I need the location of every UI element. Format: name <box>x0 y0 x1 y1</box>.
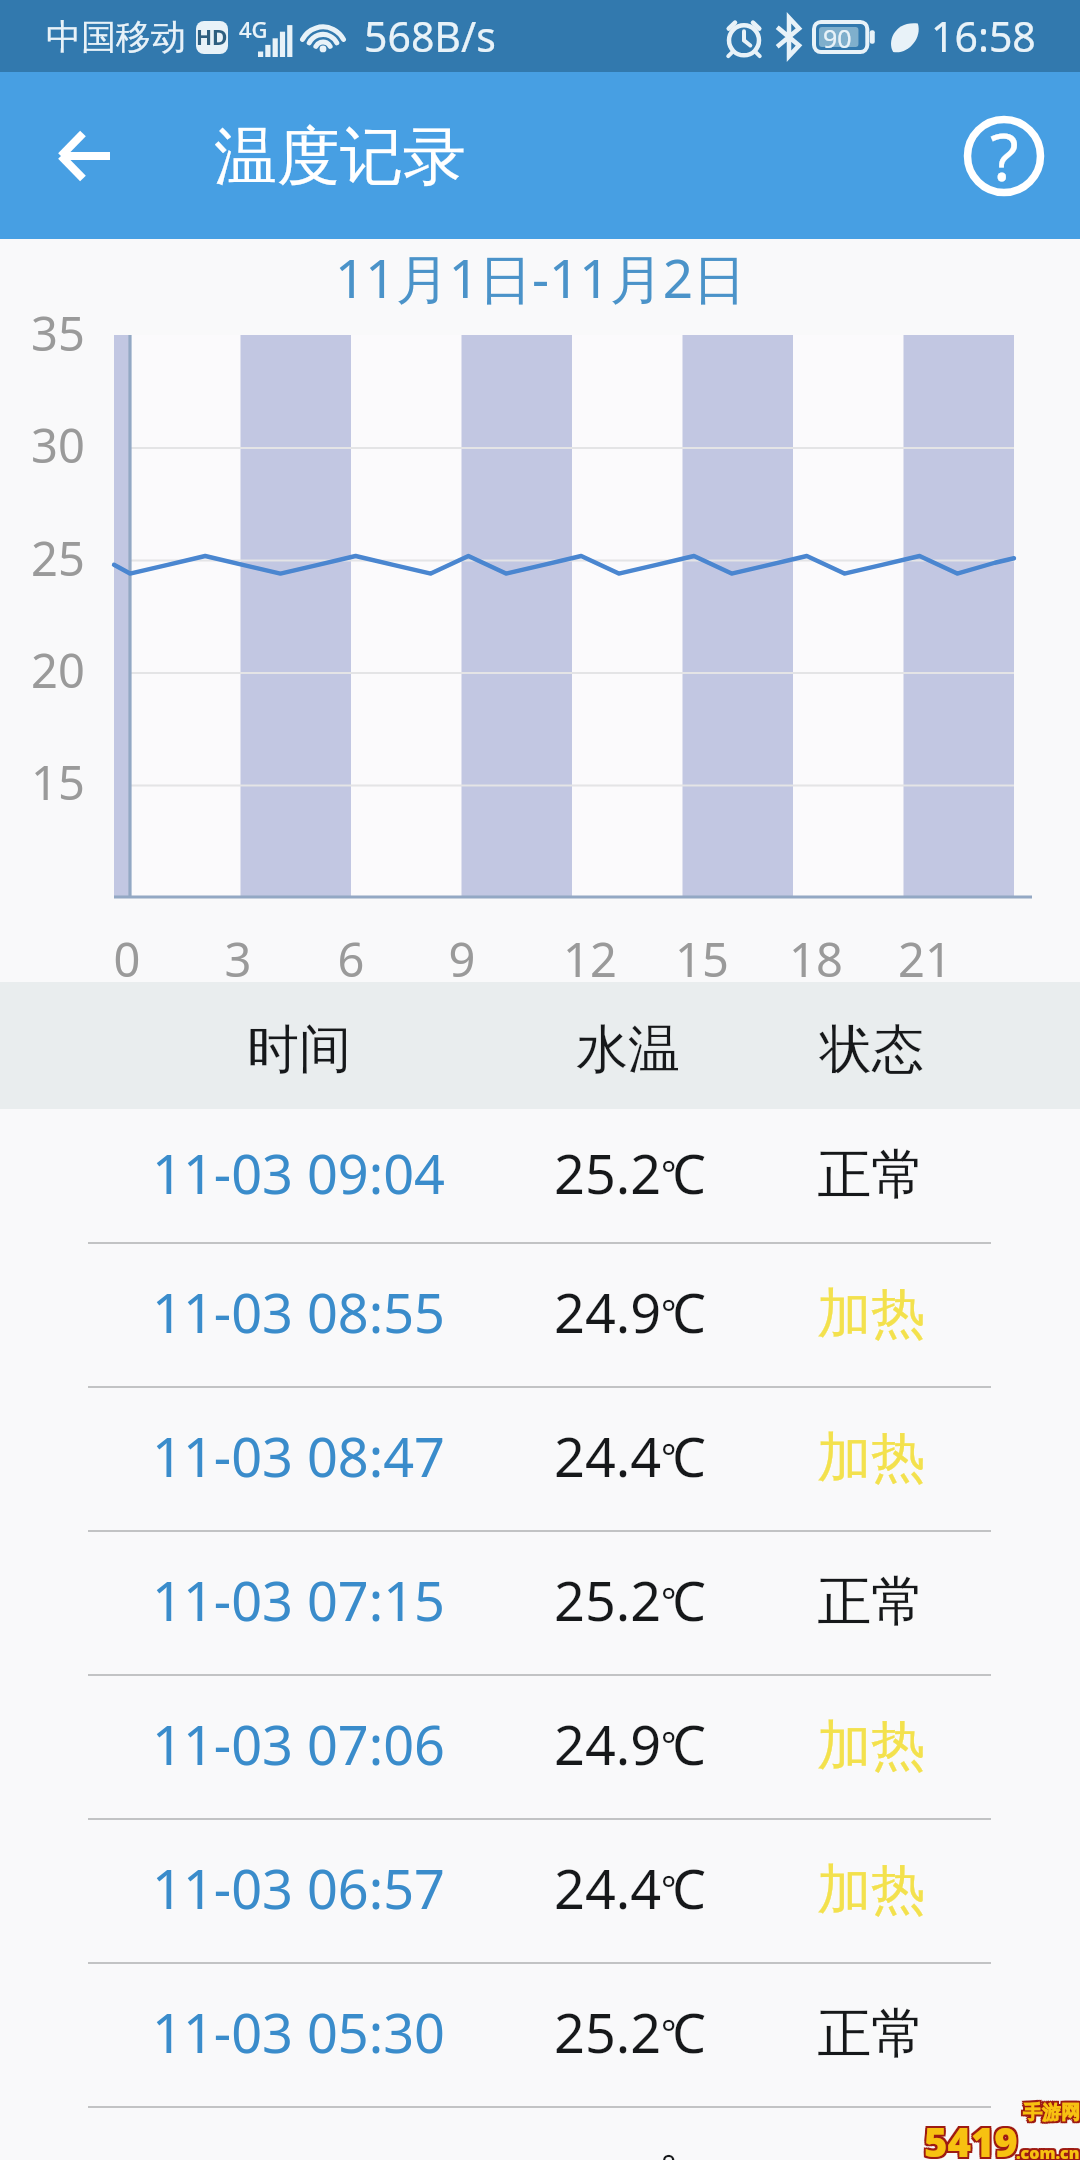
staticText: 0 <box>77 927 177 991</box>
staticText: 5419 <box>926 2112 1020 2160</box>
staticText: 手游网 <box>1025 2099 1080 2123</box>
staticText: ° <box>661 1864 677 1913</box>
staticText: 手游网 <box>1023 2101 1080 2125</box>
staticText: 20 <box>31 638 101 702</box>
staticText: .com.cn <box>1016 2144 1080 2160</box>
staticText: 568B/s <box>364 8 496 64</box>
staticText: C <box>672 2152 707 2160</box>
staticText: 中国移动 <box>46 15 186 59</box>
staticText: C <box>672 1419 707 1493</box>
staticText: .com.cn <box>1018 2144 1080 2160</box>
staticText: 12 <box>540 927 640 991</box>
staticText: C <box>672 1136 707 1210</box>
staticText: 加热 <box>817 1856 925 1924</box>
button[interactable]: 11-03 05:21 <box>0 2108 1080 2160</box>
staticText: 5419 <box>924 2116 1018 2160</box>
staticText: 15 <box>652 927 752 991</box>
staticText: .com.cn <box>1018 2140 1080 2160</box>
staticText: 24.9 <box>554 1707 662 1781</box>
staticText: 25.2 <box>554 1995 662 2069</box>
staticText: 5419 <box>922 2116 1016 2160</box>
staticText: 正常 <box>817 1141 925 1209</box>
staticText: C <box>672 1275 707 1349</box>
staticText: 21 <box>875 927 975 991</box>
staticText: 手游网 <box>1023 2099 1080 2123</box>
staticText: 24.4 <box>554 1851 662 1925</box>
staticText: .com.cn <box>1018 2142 1080 2160</box>
staticText: 加热 <box>817 1424 925 1492</box>
staticText: 5419 <box>922 2114 1016 2160</box>
staticText: 25.2 <box>554 1563 662 1637</box>
button[interactable]: 11-03 08:55 <box>0 1244 1080 1388</box>
staticText: 正常 <box>817 2000 925 2068</box>
staticText: 5419 <box>924 2112 1018 2160</box>
staticText: 11-03 09:04 <box>152 1136 446 1210</box>
staticText: .com.cn <box>1014 2140 1078 2160</box>
staticText: 35 <box>31 301 101 365</box>
staticText: ° <box>661 2008 677 2057</box>
staticText: 时间 <box>247 1017 351 1083</box>
staticText: ° <box>661 1288 677 1337</box>
staticText: 30 <box>31 413 101 477</box>
staticText: 状态 <box>820 1017 924 1083</box>
staticText: 11月1日-11月2日 <box>335 241 746 313</box>
staticText: 5419 <box>922 2112 1016 2160</box>
staticText: 11-03 08:55 <box>152 1275 446 1349</box>
button[interactable]: 11-03 07:15 <box>0 1532 1080 1676</box>
staticText: 3 <box>188 927 288 991</box>
staticText: 水温 <box>576 1017 680 1083</box>
staticText: C <box>672 1995 707 2069</box>
staticText: 16:58 <box>931 8 1036 64</box>
staticText: 手游网 <box>1021 2101 1078 2125</box>
staticText: ° <box>661 2143 677 2160</box>
staticText: 15 <box>31 750 101 814</box>
staticText: 手游网 <box>1021 2103 1078 2127</box>
staticText: 加热 <box>817 1712 925 1780</box>
button[interactable]: 11-03 05:30 <box>0 1964 1080 2108</box>
staticText: ° <box>661 1720 677 1769</box>
staticText: 5419 <box>926 2116 1020 2160</box>
staticText: C <box>672 1851 707 1925</box>
staticText: 6 <box>301 927 401 991</box>
staticText: .com.cn <box>1014 2144 1078 2160</box>
staticText: ° <box>661 1432 677 1481</box>
staticText: 11-03 07:15 <box>152 1563 446 1637</box>
button[interactable]: 11-03 07:06 <box>0 1676 1080 1820</box>
staticText: 11-03 07:06 <box>152 1707 446 1781</box>
staticText: 手游网 <box>1025 2103 1080 2127</box>
staticText: 手游网 <box>1023 2103 1080 2127</box>
button[interactable]: 11-03 06:57 <box>0 1820 1080 1964</box>
staticText: 24.9 <box>554 1275 662 1349</box>
staticText: 5419 <box>926 2114 1020 2160</box>
staticText: ° <box>661 1149 677 1198</box>
staticText: ? <box>990 110 1019 200</box>
staticText: .com.cn <box>1014 2142 1078 2160</box>
staticText: 18 <box>766 927 866 991</box>
staticText: 正常 <box>817 1568 925 1636</box>
staticText: C <box>672 1563 707 1637</box>
staticText: 11-03 06:57 <box>152 1851 446 1925</box>
button[interactable]: 11-03 08:47 <box>0 1388 1080 1532</box>
staticText: 温度记录 <box>214 117 466 196</box>
staticText: 11-03 08:47 <box>152 1419 446 1493</box>
staticText: 4G <box>239 14 268 44</box>
staticText: 11-03 05:30 <box>152 1995 446 2069</box>
staticText: 手游网 <box>1025 2101 1080 2125</box>
staticText: 9 <box>412 927 512 991</box>
staticText: .com.cn <box>1016 2142 1080 2160</box>
staticText: ° <box>661 1576 677 1625</box>
staticText: 25 <box>31 526 101 590</box>
staticText: 手游网 <box>1021 2099 1078 2123</box>
staticText: 90 <box>823 21 852 55</box>
staticText: .com.cn <box>1016 2140 1080 2160</box>
button[interactable]: Help <box>954 106 1054 206</box>
staticText: 5419 <box>924 2114 1018 2160</box>
staticText: 加热 <box>817 1280 925 1348</box>
button[interactable]: 11-03 09:04 <box>0 1109 1080 1244</box>
staticText: C <box>672 1707 707 1781</box>
staticText: 24.4 <box>554 1419 662 1493</box>
button[interactable]: Back <box>36 108 132 204</box>
staticText: HD <box>196 23 228 52</box>
